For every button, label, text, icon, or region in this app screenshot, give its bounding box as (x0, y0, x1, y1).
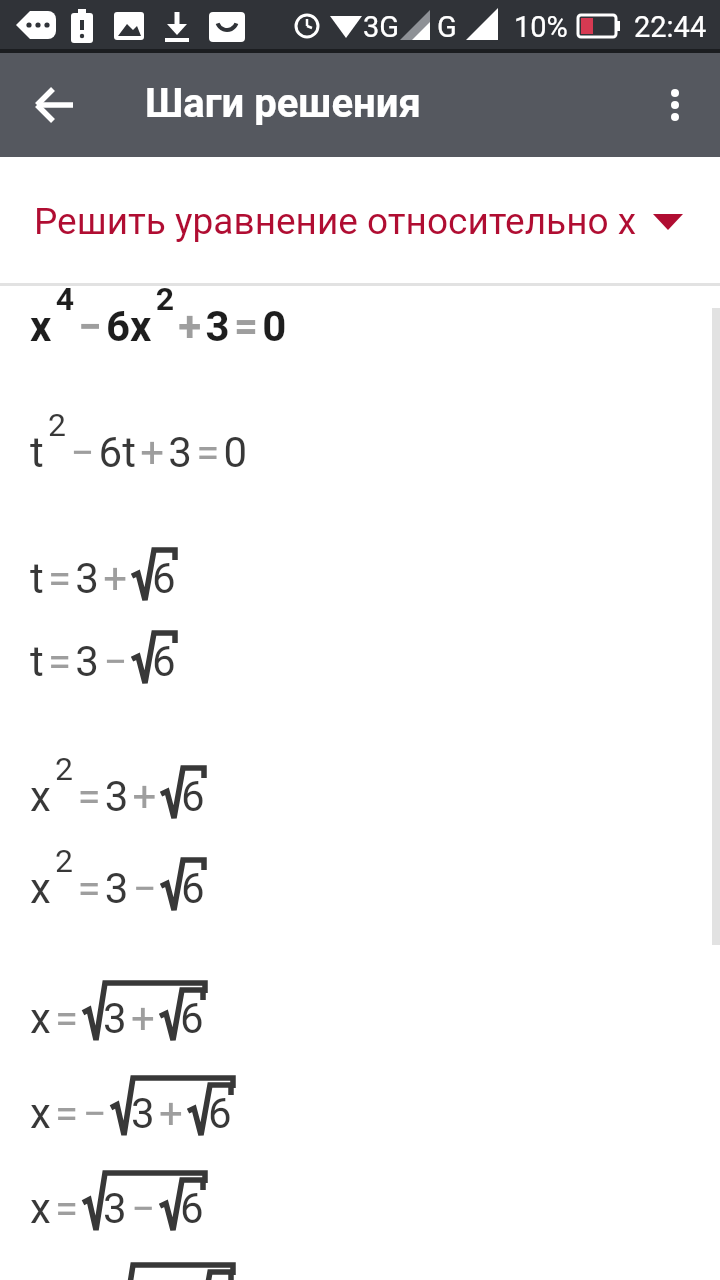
staticText: 6 (180, 1184, 204, 1233)
button[interactable]: Решить уравнение относительно x (0, 157, 720, 286)
staticText: t 2 − 6t + 3 = 0 (30, 406, 248, 477)
staticText: t = 3 + (30, 554, 132, 603)
staticText: 6 (181, 864, 205, 913)
staticText: Решить уравнение относительно x (34, 200, 637, 243)
staticText: G (437, 10, 457, 44)
staticText: x 2 = 3 + (30, 750, 161, 821)
staticText: x = − (30, 1089, 111, 1138)
button[interactable] (20, 70, 90, 140)
staticText: 3 − (103, 1184, 160, 1233)
staticText: 3G (363, 10, 400, 44)
staticText: 22:44 (634, 10, 707, 44)
staticText: 3 − (131, 1276, 188, 1280)
staticText: x = (30, 1184, 83, 1233)
staticText: 6 (208, 1276, 232, 1280)
staticText: 3 + (131, 1089, 188, 1138)
staticText: 6 (208, 1089, 232, 1138)
staticText: x = (30, 994, 83, 1043)
staticText: 10% (514, 10, 568, 44)
staticText: Шаги решения (145, 80, 421, 127)
staticText: 6 (152, 637, 176, 686)
staticText: x 2 = 3 − (30, 842, 161, 913)
button[interactable] (650, 80, 700, 130)
staticText: 3 + (103, 994, 160, 1043)
staticText: x 4 − 6x 2 + 3 = 0 (30, 280, 287, 351)
staticText: 6 (180, 994, 204, 1043)
staticText: 6 (152, 554, 176, 603)
staticText: t = 3 − (30, 637, 132, 686)
staticText: 6 (181, 772, 205, 821)
